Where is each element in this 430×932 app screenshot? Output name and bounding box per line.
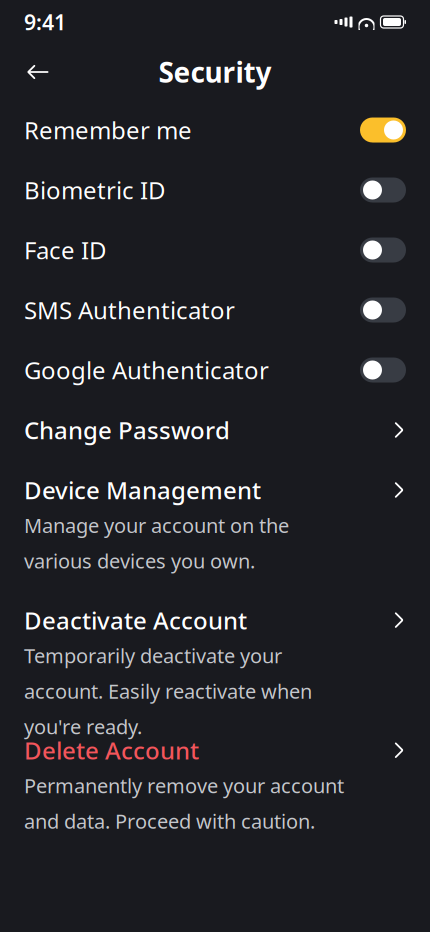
button[interactable]: Biometric ID [0, 160, 430, 220]
staticText: Deactivate Account [24, 604, 247, 636]
staticText: Temporarily deactivate your account. Eas… [24, 642, 312, 704]
button[interactable]: SMS Authenticator [0, 280, 430, 340]
staticText: Security [158, 53, 271, 91]
staticText: 9:41 [24, 8, 66, 36]
button[interactable]: Delete Account [0, 730, 430, 842]
staticText: Biometric ID [24, 174, 166, 206]
staticText: Delete Account [24, 734, 199, 766]
button[interactable]: Device Management [0, 470, 430, 582]
staticText: Manage your account on the various devic… [24, 512, 289, 574]
button[interactable]: Remember me [0, 100, 430, 160]
staticText: Face ID [24, 234, 107, 266]
button[interactable]: Deactivate Account [0, 600, 430, 712]
staticText: Google Authenticator [24, 354, 269, 386]
staticText: Change Password [24, 414, 230, 446]
button[interactable]: Face ID [0, 220, 430, 280]
button[interactable]: Change Password [0, 410, 430, 450]
button[interactable]: Google Authenticator [0, 340, 430, 400]
staticText: Remember me [24, 114, 192, 146]
staticText: Permanently remove your account and data… [24, 772, 344, 834]
staticText: Device Management [24, 474, 261, 506]
staticText: SMS Authenticator [24, 294, 235, 326]
button[interactable]: Back [16, 50, 60, 94]
